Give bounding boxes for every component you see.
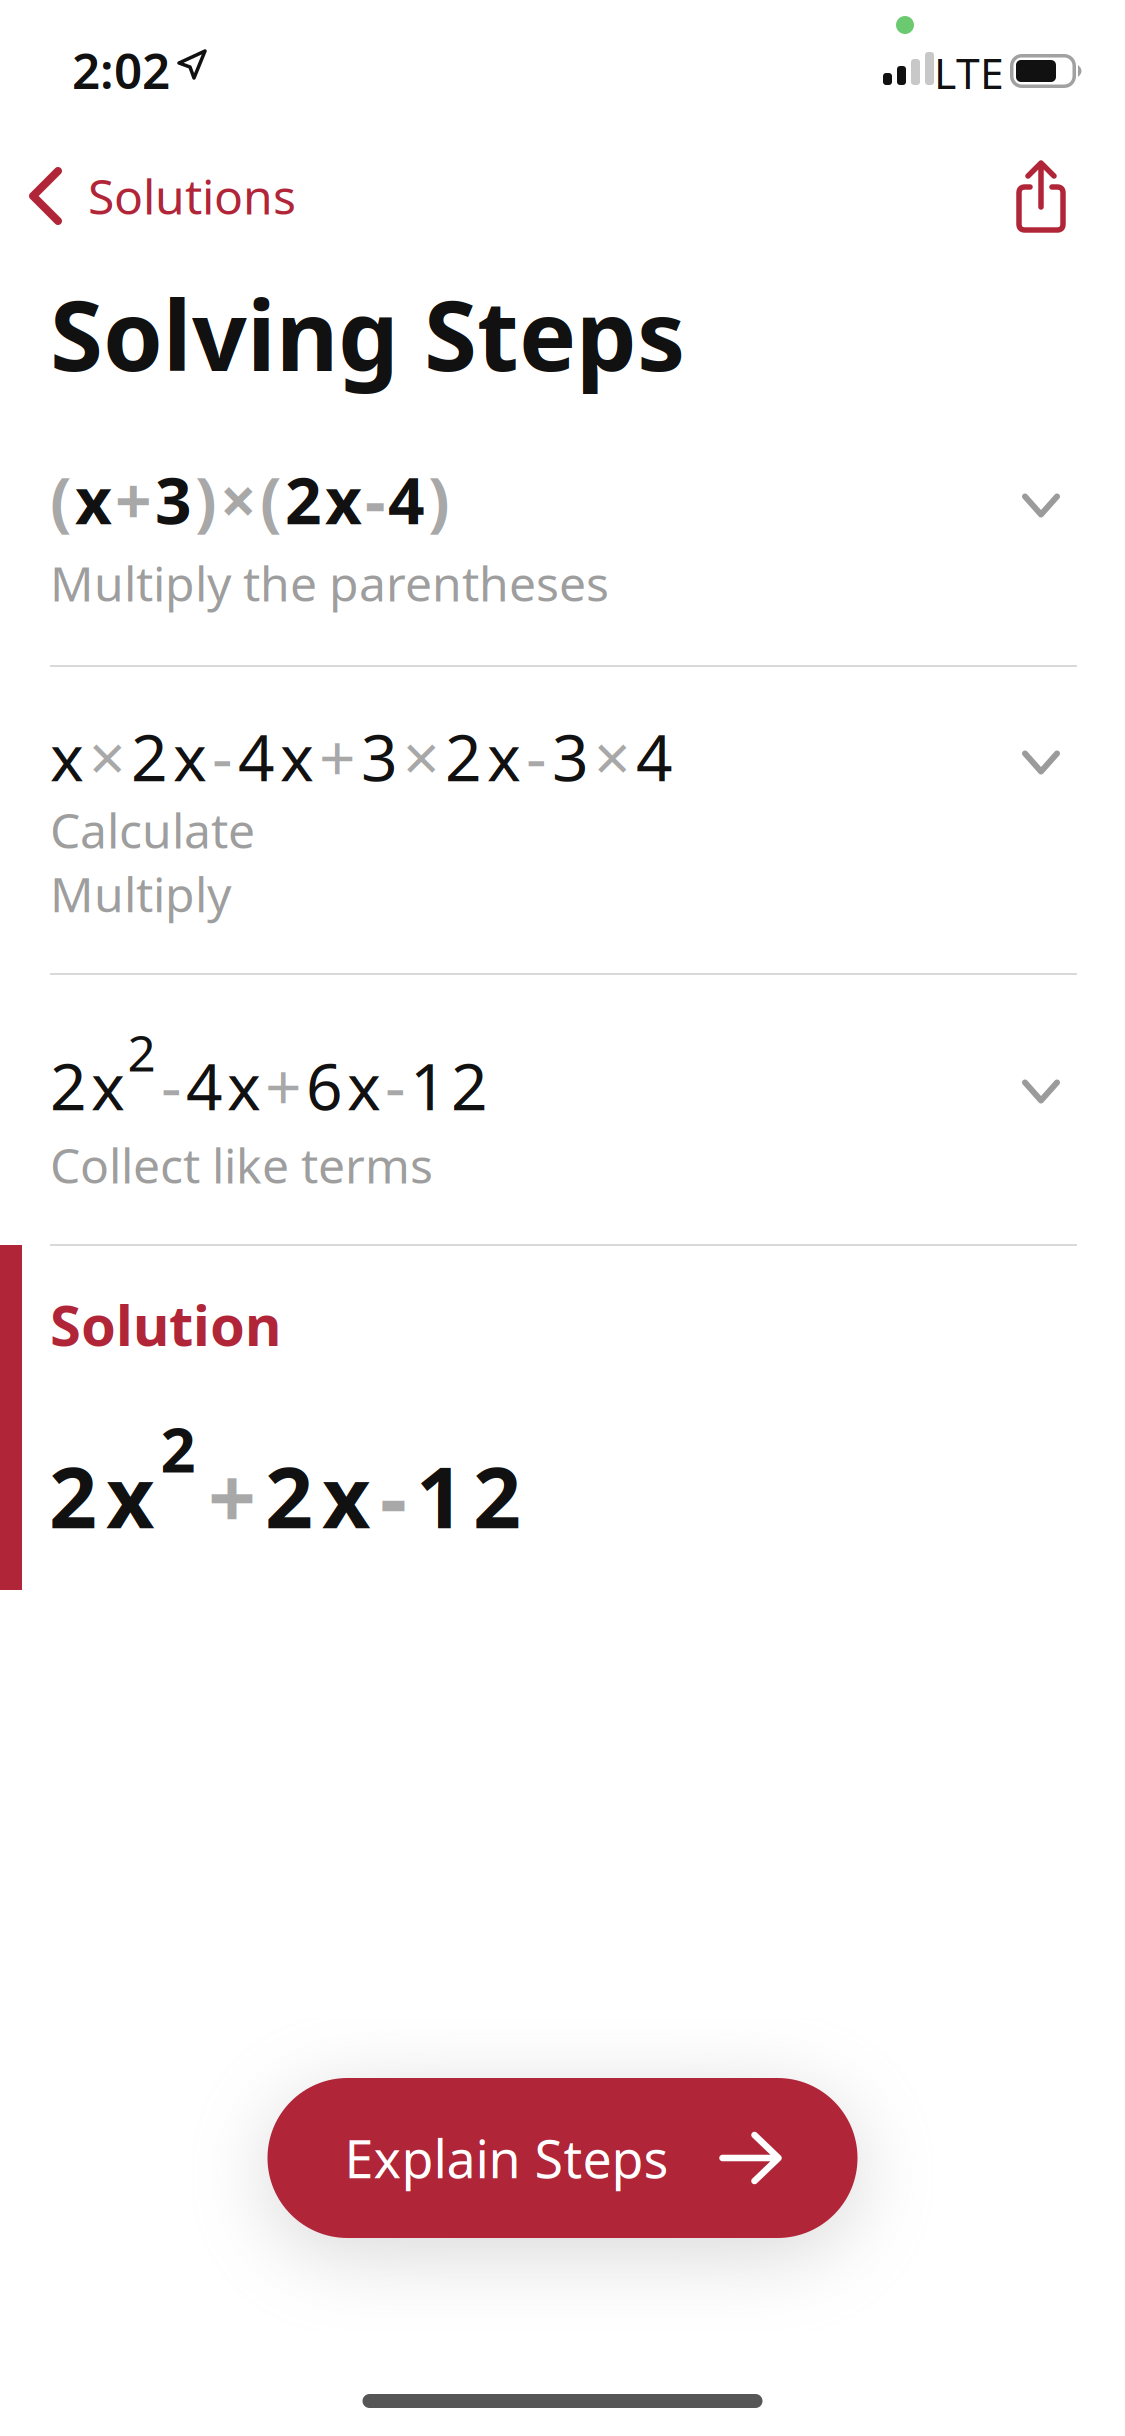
button[interactable]: Share: [1017, 160, 1065, 232]
staticText: -: [161, 1043, 182, 1128]
staticText: (: [260, 457, 282, 542]
staticText: x: [91, 1043, 125, 1128]
staticText: Solution: [50, 1287, 281, 1361]
staticText: Collect like terms: [50, 1133, 433, 1197]
staticText: Solutions: [88, 164, 296, 228]
button[interactable]: Back to Solutions: [28, 164, 296, 228]
staticText: 2: [127, 1020, 155, 1085]
staticText: x: [50, 714, 84, 799]
staticText: 4: [636, 714, 673, 799]
staticText: 3: [155, 457, 192, 542]
staticText: x: [325, 457, 362, 542]
staticText: ×: [89, 714, 126, 799]
staticText: -: [365, 457, 385, 542]
staticText: +: [115, 457, 152, 542]
staticText: x: [322, 1440, 371, 1551]
staticText: 2: [49, 1440, 97, 1551]
staticText: Calculate Multiply: [50, 798, 255, 925]
button[interactable]: 2: [50, 1043, 1077, 1197]
button[interactable]: Explain Steps: [267, 2078, 857, 2238]
staticText: 2: [265, 1440, 313, 1551]
staticText: -: [526, 714, 547, 799]
staticText: 2: [451, 1043, 488, 1128]
staticText: 2: [285, 457, 322, 542]
staticText: ×: [220, 457, 257, 542]
staticText: 2: [445, 714, 482, 799]
staticText: x: [173, 714, 207, 799]
staticText: x: [487, 714, 521, 799]
staticText: x: [347, 1043, 381, 1128]
staticText: 4: [186, 1043, 223, 1128]
staticText: 2: [160, 1408, 195, 1489]
staticText: 1: [410, 1043, 447, 1128]
staticText: 2: [131, 714, 168, 799]
staticText: +: [265, 1043, 302, 1128]
staticText: x: [227, 1043, 261, 1128]
staticText: +: [319, 714, 356, 799]
staticText: x: [75, 457, 112, 542]
staticText: ×: [594, 714, 631, 799]
staticText: 2: [50, 1043, 87, 1128]
staticText: Multiply the parentheses: [50, 551, 609, 615]
staticText: ×: [403, 714, 440, 799]
staticText: -: [385, 1043, 406, 1128]
staticText: 3: [552, 714, 589, 799]
staticText: 4: [388, 457, 425, 542]
staticText: 1: [416, 1440, 464, 1551]
staticText: 2:02: [72, 37, 170, 102]
staticText: -: [212, 714, 233, 799]
staticText: 6: [306, 1043, 343, 1128]
staticText: x: [280, 714, 314, 799]
staticText: +: [208, 1440, 256, 1551]
staticText: 2: [473, 1440, 521, 1551]
staticText: x: [106, 1440, 155, 1551]
staticText: -: [380, 1440, 407, 1551]
staticText: Explain Steps: [344, 2123, 668, 2193]
button[interactable]: x: [50, 714, 1077, 926]
staticText: (: [50, 457, 72, 542]
button[interactable]: (: [50, 457, 1077, 615]
staticText: ): [195, 457, 217, 542]
staticText: Solving Steps: [50, 270, 685, 397]
staticText: ): [428, 457, 450, 542]
staticText: LTE: [934, 44, 1004, 101]
staticText: 3: [361, 714, 398, 799]
staticText: 4: [238, 714, 275, 799]
